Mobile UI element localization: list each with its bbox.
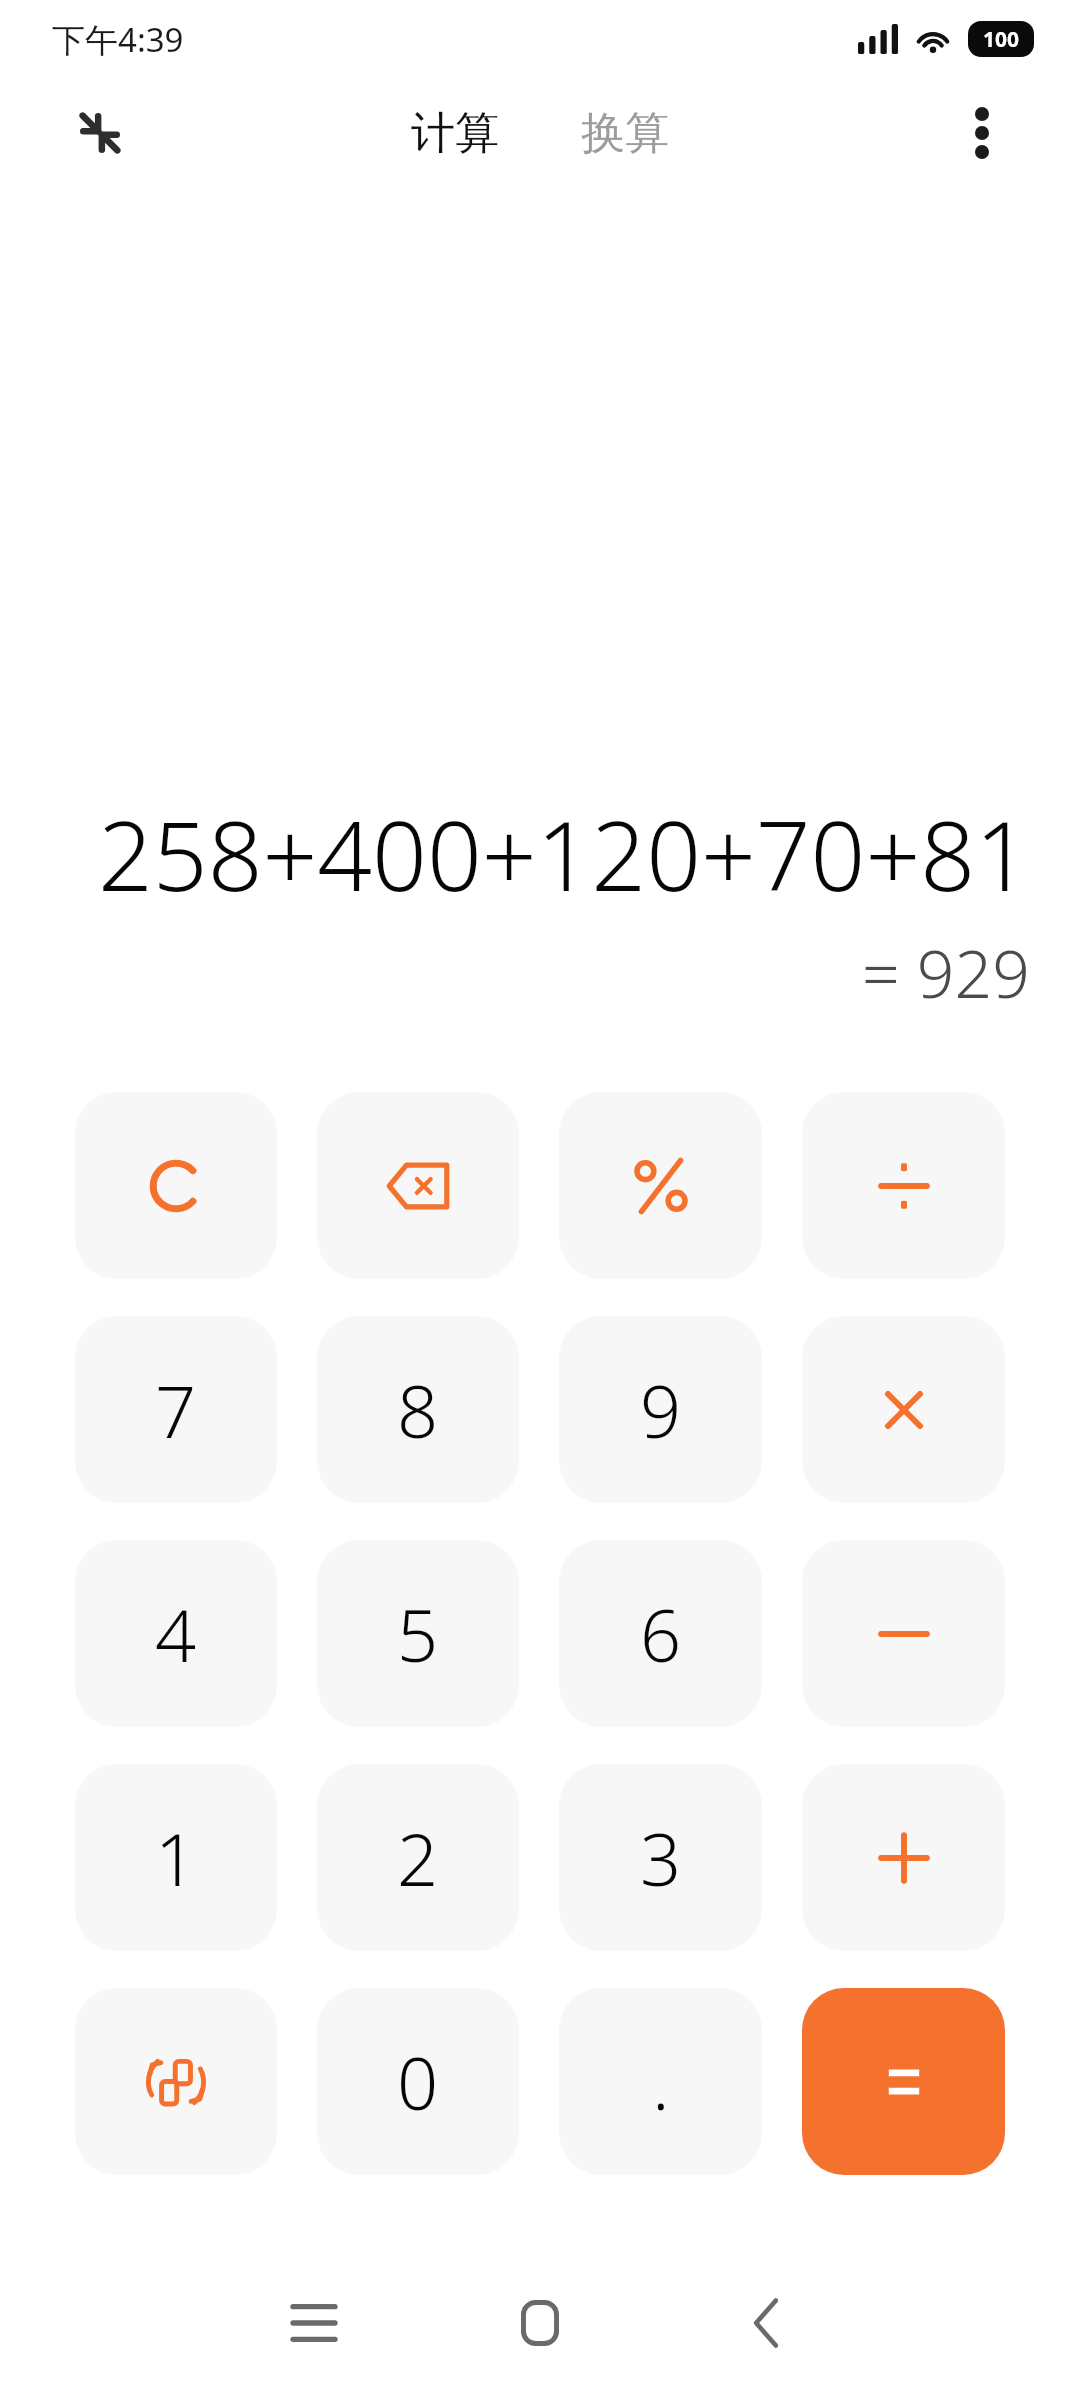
- button[interactable]: .: [559, 1988, 762, 2175]
- staticText: 7: [155, 1361, 197, 1459]
- staticText: 9: [640, 1361, 682, 1459]
- staticText: = 929: [862, 927, 1030, 1017]
- staticText: 2: [397, 1809, 439, 1907]
- staticText: 258+400+120+70+81: [98, 788, 1030, 919]
- button[interactable]: 1: [75, 1764, 277, 1951]
- button[interactable]: 计算: [395, 92, 515, 175]
- staticText: 4: [155, 1585, 197, 1683]
- staticText: 0: [397, 2033, 439, 2131]
- staticText: 计算: [411, 106, 499, 161]
- button[interactable]: Percent: [559, 1092, 762, 1279]
- staticText: .: [652, 2033, 670, 2131]
- button[interactable]: Clear: [75, 1092, 277, 1279]
- button[interactable]: 3: [559, 1764, 762, 1951]
- button[interactable]: 2: [317, 1764, 519, 1951]
- button[interactable]: Recent apps: [255, 2264, 373, 2382]
- staticText: 100: [983, 25, 1020, 54]
- button[interactable]: Convert units: [75, 1988, 277, 2175]
- button[interactable]: Minus: [802, 1540, 1005, 1727]
- staticText: 3: [640, 1809, 682, 1907]
- button[interactable]: Home: [481, 2264, 599, 2382]
- button[interactable]: 6: [559, 1540, 762, 1727]
- staticText: 8: [397, 1361, 439, 1459]
- button[interactable]: Backspace: [317, 1092, 519, 1279]
- staticText: 下午4:39: [52, 17, 184, 62]
- button[interactable]: Plus: [802, 1764, 1005, 1951]
- button[interactable]: Divide: [802, 1092, 1005, 1279]
- button[interactable]: More options: [930, 81, 1034, 185]
- button[interactable]: Equals: [802, 1988, 1005, 2175]
- button[interactable]: Back: [707, 2264, 825, 2382]
- button[interactable]: 0: [317, 1988, 519, 2175]
- staticText: 1: [155, 1809, 197, 1907]
- button[interactable]: 5: [317, 1540, 519, 1727]
- button[interactable]: Multiply: [802, 1316, 1005, 1503]
- button[interactable]: 8: [317, 1316, 519, 1503]
- button[interactable]: 7: [75, 1316, 277, 1503]
- staticText: 换算: [581, 106, 669, 161]
- button[interactable]: 4: [75, 1540, 277, 1727]
- staticText: 5: [397, 1585, 439, 1683]
- staticText: 6: [640, 1585, 682, 1683]
- button[interactable]: 换算: [565, 92, 685, 175]
- button[interactable]: 9: [559, 1316, 762, 1503]
- button[interactable]: Collapse: [48, 81, 152, 185]
